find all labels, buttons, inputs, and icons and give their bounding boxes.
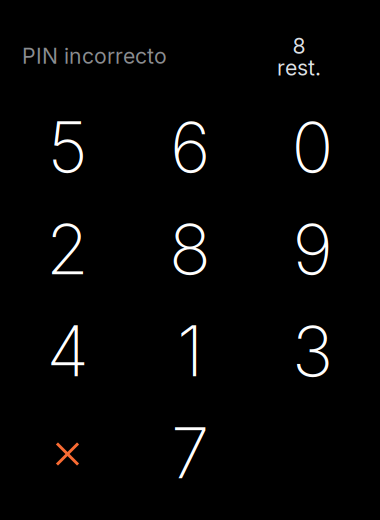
button[interactable]: 8 — [129, 198, 251, 300]
button[interactable]: 3 — [251, 300, 374, 402]
staticText: 7 — [171, 411, 209, 495]
staticText: 5 — [47, 105, 87, 189]
staticText: 9 — [292, 207, 332, 291]
staticText: 3 — [292, 309, 333, 393]
staticText: 4 — [46, 309, 88, 393]
button[interactable]: 1 — [129, 300, 251, 402]
button[interactable]: 7 — [129, 402, 251, 504]
button[interactable]: 4 — [6, 300, 129, 402]
staticText: 2 — [46, 207, 89, 291]
button[interactable]: 2 — [6, 198, 129, 300]
staticText: 8 — [169, 207, 211, 291]
staticText: 0 — [291, 105, 333, 189]
staticText: PIN incorrecto — [22, 43, 167, 69]
button[interactable]: Borrar — [6, 402, 129, 504]
staticText: 1 — [177, 309, 203, 393]
button[interactable]: 6 — [129, 96, 251, 198]
button[interactable]: 9 — [251, 198, 374, 300]
staticText: 8 — [292, 33, 305, 59]
button[interactable]: 5 — [6, 96, 129, 198]
button[interactable]: 0 — [251, 96, 374, 198]
staticText: rest. — [277, 55, 321, 81]
staticText: 6 — [170, 105, 210, 189]
